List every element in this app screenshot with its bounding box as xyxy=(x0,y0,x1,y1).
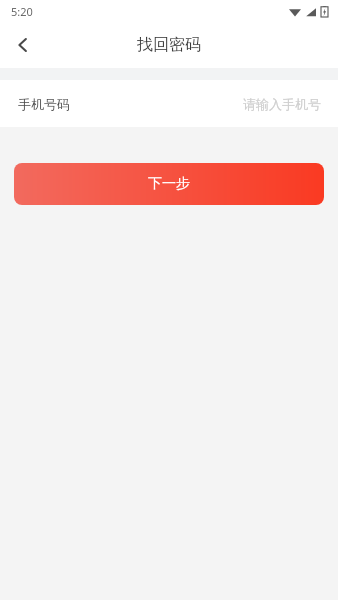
staticText: 下一步 xyxy=(148,175,190,193)
button[interactable]: Back xyxy=(0,22,46,68)
staticText: 请输入手机号 xyxy=(243,96,321,112)
staticText: 手机号码 xyxy=(18,96,70,112)
staticText: 找回密码 xyxy=(137,35,201,55)
button[interactable]: 手机号码 xyxy=(0,80,338,127)
button[interactable]: 下一步 xyxy=(14,163,324,205)
staticText: 5:20 xyxy=(11,4,33,19)
